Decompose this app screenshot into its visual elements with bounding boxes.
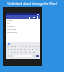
button[interactable]: f <box>16 48 19 51</box>
staticText: r <box>20 45 21 48</box>
staticText: To <box>7 22 10 25</box>
staticText: j <box>29 48 30 51</box>
staticText: n <box>29 51 31 54</box>
button[interactable]: o <box>34 45 37 48</box>
button[interactable]: x <box>13 51 16 54</box>
staticText: Signature <box>7 31 17 34</box>
button[interactable]: l <box>35 48 39 51</box>
staticText: Unlimited cloud storage for Pixel owners <box>2 2 62 6</box>
button[interactable]: q <box>6 45 10 48</box>
staticText: f <box>17 48 18 51</box>
staticText: d <box>14 48 16 51</box>
staticText: h <box>24 48 26 51</box>
button[interactable]: z <box>10 51 13 54</box>
button[interactable]: d <box>13 48 16 51</box>
button[interactable]: w <box>10 45 14 48</box>
staticText: c <box>17 51 19 54</box>
button[interactable]: g <box>19 48 23 51</box>
button[interactable]: k <box>31 48 35 51</box>
staticText: e <box>15 45 17 48</box>
staticText: y <box>26 45 28 48</box>
button[interactable]: p <box>37 45 40 48</box>
button[interactable]: Attach file <box>28 16 31 19</box>
staticText: w <box>11 45 13 48</box>
staticText: m <box>33 51 36 54</box>
staticText: a <box>8 48 10 51</box>
button[interactable]: y <box>25 45 28 48</box>
staticText: i <box>32 45 33 48</box>
staticText: t <box>23 45 24 48</box>
staticText: q <box>7 45 9 48</box>
button[interactable]: Enter <box>36 55 39 57</box>
button[interactable]: h <box>23 48 27 51</box>
button[interactable]: More options <box>36 16 39 19</box>
button[interactable]: a <box>7 48 10 51</box>
staticText: u <box>29 45 31 48</box>
button[interactable]: m <box>32 51 36 54</box>
staticText: From <box>7 19 13 22</box>
button[interactable]: b <box>24 51 28 54</box>
button[interactable]: Signature <box>6 31 40 34</box>
button[interactable]: Send <box>32 16 35 19</box>
staticText: Message <box>7 28 17 31</box>
staticText: b <box>25 51 27 54</box>
staticText: l <box>37 48 38 51</box>
button[interactable]: i <box>31 45 34 48</box>
button[interactable]: n <box>28 51 32 54</box>
button[interactable]: v <box>20 51 24 54</box>
button[interactable]: From <box>6 19 40 22</box>
button[interactable]: To <box>6 22 40 25</box>
staticText: k <box>32 48 34 51</box>
button[interactable]: r <box>18 45 22 48</box>
button[interactable]: u <box>28 45 31 48</box>
button[interactable]: s <box>10 48 13 51</box>
button[interactable]: j <box>27 48 31 51</box>
staticText: p <box>38 45 40 48</box>
button[interactable]: t <box>22 45 25 48</box>
staticText: Subject <box>7 25 15 28</box>
staticText: o <box>35 45 37 48</box>
staticText: z <box>11 51 13 54</box>
staticText: s <box>11 48 13 51</box>
staticText: v <box>21 51 23 54</box>
button[interactable]: c <box>16 51 20 54</box>
button[interactable]: e <box>14 45 18 48</box>
button[interactable]: Message <box>6 28 40 31</box>
staticText: x <box>14 51 16 54</box>
button[interactable]: Subject <box>6 25 40 28</box>
staticText: g <box>20 48 22 51</box>
